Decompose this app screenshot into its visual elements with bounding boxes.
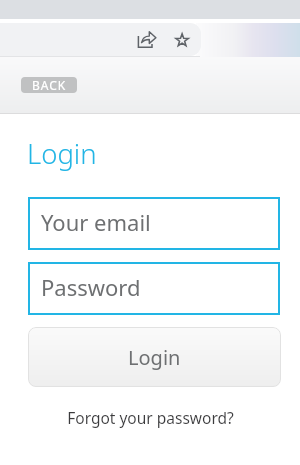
staticText: Login <box>128 344 181 371</box>
staticText: Your email <box>41 207 151 237</box>
button[interactable]: Forgot your password? <box>67 407 234 428</box>
button[interactable]: BACK <box>21 77 77 93</box>
button[interactable]: Password <box>28 262 280 315</box>
button[interactable]: Login <box>28 327 281 387</box>
staticText: Login <box>27 135 97 172</box>
button[interactable]: Share <box>135 27 159 51</box>
staticText: BACK <box>32 77 67 93</box>
staticText: Password <box>41 272 141 302</box>
button[interactable]: Your email <box>28 197 280 250</box>
button[interactable]: Bookmark <box>170 28 194 52</box>
